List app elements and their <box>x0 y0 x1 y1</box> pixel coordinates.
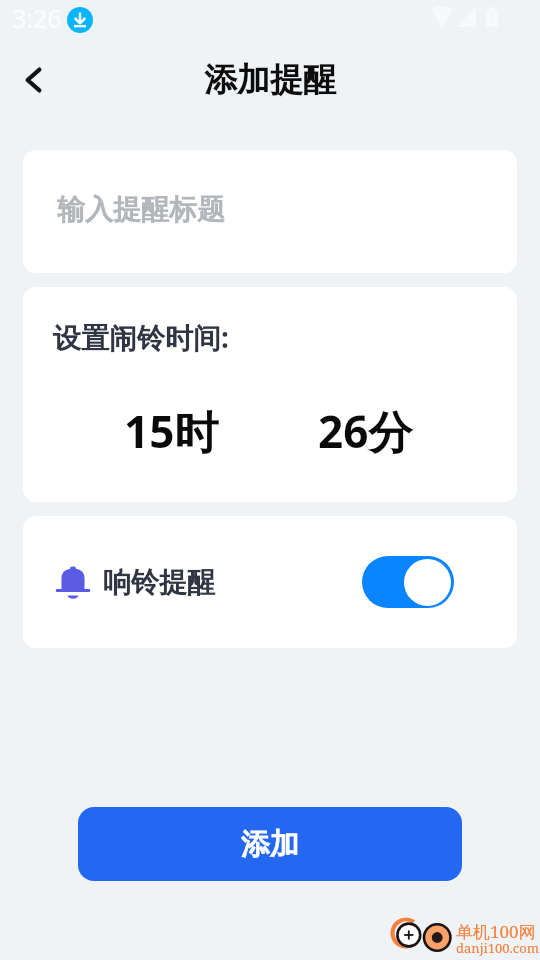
staticText: 设置闹铃时间: <box>53 318 229 356</box>
button[interactable]: 26分 <box>318 401 413 461</box>
button[interactable]: 输入提醒标题 <box>23 150 517 273</box>
button[interactable]: Back <box>10 57 56 103</box>
staticText: 响铃提醒 <box>103 565 215 600</box>
staticText: 添加 <box>241 826 299 863</box>
button[interactable]: 添加 <box>78 807 462 881</box>
button[interactable]: 响铃提醒 <box>23 516 517 648</box>
button[interactable]: 15时 <box>124 401 219 461</box>
staticText: 单机100网 <box>456 920 536 943</box>
staticText: 添加提醒 <box>204 59 336 101</box>
staticText: 3:26 <box>12 1 62 35</box>
staticText: 输入提醒标题 <box>57 192 225 227</box>
staticText: danji100.com <box>456 939 539 957</box>
button[interactable]: Ring alarm toggle <box>362 556 454 608</box>
